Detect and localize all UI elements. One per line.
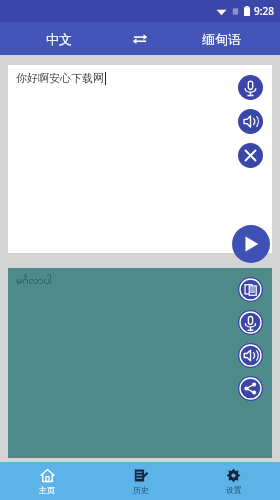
staticText: 主页 bbox=[39, 485, 55, 495]
button[interactable]: Swap languages bbox=[117, 22, 163, 55]
button[interactable]: Listen bbox=[238, 109, 263, 134]
button[interactable]: 中文 bbox=[0, 22, 117, 55]
staticText: 9:28 bbox=[254, 4, 274, 18]
staticText: မင်္ဂလာပါ bbox=[16, 273, 52, 289]
button[interactable]: Voice input bbox=[238, 75, 263, 100]
staticText: 你好啊安心下载网 bbox=[16, 71, 104, 85]
button[interactable]: Listen bbox=[238, 343, 263, 368]
button[interactable]: Translate bbox=[232, 225, 270, 263]
button[interactable]: 历史 bbox=[94, 462, 187, 500]
button[interactable]: 主页 bbox=[0, 462, 94, 500]
button[interactable] bbox=[8, 65, 272, 253]
button[interactable]: 缅甸语 bbox=[163, 22, 280, 55]
button[interactable] bbox=[8, 268, 272, 458]
staticText: 设置 bbox=[226, 485, 242, 495]
staticText: 缅甸语 bbox=[202, 31, 241, 47]
button[interactable]: Share bbox=[238, 376, 263, 401]
button[interactable]: Clear text bbox=[238, 143, 263, 168]
button[interactable]: 设置 bbox=[187, 462, 280, 500]
button[interactable]: Copy translation bbox=[238, 277, 263, 302]
button[interactable]: Voice input bbox=[238, 310, 263, 335]
staticText: 中文 bbox=[46, 31, 72, 47]
staticText: 历史 bbox=[133, 485, 149, 495]
